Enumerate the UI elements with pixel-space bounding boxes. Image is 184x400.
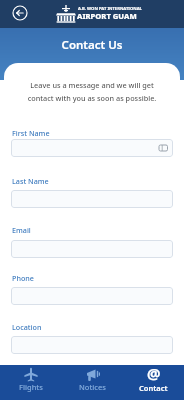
staticText: @ <box>147 363 161 383</box>
button[interactable] <box>11 190 173 208</box>
button[interactable] <box>11 240 173 258</box>
button[interactable]: Flights <box>0 365 62 400</box>
staticText: Contact <box>139 383 168 393</box>
button[interactable] <box>11 336 173 354</box>
staticText: Location <box>12 322 42 332</box>
staticText: Email <box>12 225 31 235</box>
button[interactable]: Notices <box>62 365 123 400</box>
staticText: Last Name <box>12 176 49 186</box>
staticText: Phone <box>12 273 34 283</box>
button[interactable] <box>10 3 29 22</box>
staticText: First Name <box>12 128 50 138</box>
staticText: Flights <box>19 382 43 392</box>
staticText: Leave us a message and we will get conta… <box>4 80 180 103</box>
button[interactable] <box>11 139 173 157</box>
button[interactable] <box>11 287 173 305</box>
staticText: A.B. WON PAT INTERNATIONAL <box>78 6 142 12</box>
staticText: Notices <box>79 382 106 392</box>
button[interactable]: @ <box>123 365 184 400</box>
staticText: Contact Us <box>0 37 184 53</box>
staticText: AIRPORT GUAM <box>77 11 137 21</box>
